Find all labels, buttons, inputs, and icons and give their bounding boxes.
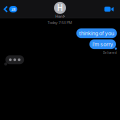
button[interactable]: FaceTime xyxy=(100,3,120,16)
staticText: H xyxy=(57,3,63,13)
staticText: i'm sorry xyxy=(92,41,113,48)
button[interactable]: Back xyxy=(0,3,21,16)
button[interactable]: H xyxy=(54,0,66,18)
staticText: 24 xyxy=(11,6,15,12)
staticText: Today 7:53 PM xyxy=(47,20,72,25)
staticText: thinking of you xyxy=(79,30,114,37)
staticText: Delivered xyxy=(103,51,117,55)
staticText: Han xyxy=(55,14,62,19)
